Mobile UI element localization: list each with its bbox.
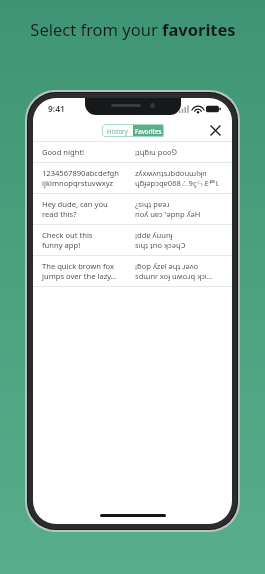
button[interactable]: Close [206,121,224,139]
button[interactable]: Good night! [33,142,232,162]
staticText: noʎ uɐɔ 'ǝpnp ʎǝH [135,209,201,219]
staticText: ¿sıɥʇ pɐǝɹ [135,199,170,209]
staticText: Favorites [135,127,162,135]
button[interactable]: Favorites [133,124,164,137]
button[interactable]: Check out this [33,225,232,255]
staticText: ¡ʇɥƃıu poo⅁ [135,147,178,157]
staticText: The quick brown fox [42,261,114,271]
staticText: ɥƃɟǝpɔqɐ068ㄥ9ϛㄣƐᄅƖ [135,178,219,188]
staticText: Check out this [42,230,93,240]
staticText: Good night! [42,147,85,157]
button[interactable]: History [102,124,133,137]
staticText: Hey dude, can you [42,199,108,209]
staticText: Select from your favorites [30,18,236,40]
staticText: ijklmnopqrstuvwxyz [42,178,114,188]
staticText: ¡ddɐ ʎuunɟ [135,230,173,240]
staticText: 1234567890abcdefgh [42,168,119,178]
staticText: sıɥʇ ʇno ʞɔǝɥƆ [135,240,186,250]
button[interactable]: 1234567890abcdefgh [33,163,232,193]
button[interactable]: Hey dude, can you [33,194,232,224]
staticText: 9:41 [48,103,65,115]
staticText: jumps over the lazy... [42,271,117,281]
button[interactable]: The quick brown fox [33,256,232,286]
staticText: ¡ƃop ʎzɐl ǝɥʇ ɹǝʌo [135,261,199,271]
staticText: read this? [42,209,77,219]
staticText: sdɯnɾ xoɟ uʍoɹq ʞɔı... [135,271,213,281]
staticText: zʎxʍʌnʇsɹbdouɯlʞɾı [135,168,207,178]
staticText: History [107,127,128,135]
staticText: funny app! [42,240,81,250]
